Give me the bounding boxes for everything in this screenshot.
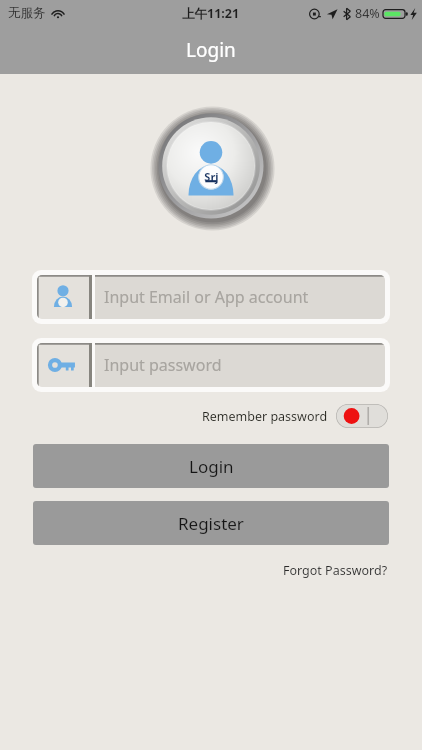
button[interactable]: Forgot Password? <box>279 559 392 582</box>
staticText: 上午11:21 <box>182 5 240 22</box>
staticText: Srj <box>204 169 219 184</box>
button[interactable]: Input password <box>37 343 385 387</box>
other: App logo <box>147 102 275 230</box>
button[interactable]: Remember password toggle <box>336 404 388 428</box>
staticText: Forgot Password? <box>283 562 388 579</box>
staticText: 84% <box>355 5 380 22</box>
staticText: Login <box>189 455 234 478</box>
staticText: Remember password <box>202 408 328 425</box>
staticText: Input password <box>104 354 222 376</box>
staticText: Input Email or App account <box>104 286 309 308</box>
staticText: 无服务 <box>8 5 46 21</box>
button[interactable]: Register <box>33 501 389 545</box>
staticText: Login <box>186 37 236 63</box>
button[interactable]: Input Email or App account <box>37 275 385 319</box>
staticText: Register <box>178 512 244 535</box>
button[interactable]: Login <box>33 444 389 488</box>
